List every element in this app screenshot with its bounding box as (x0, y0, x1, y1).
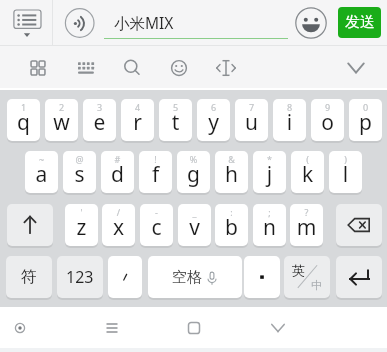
staticText: ; (253, 206, 286, 218)
button[interactable]: Shift (7, 204, 53, 246)
button[interactable]: Space (148, 256, 242, 298)
staticText: ? (290, 206, 323, 218)
button[interactable]: ! (139, 151, 172, 193)
button[interactable]: ) (329, 151, 362, 193)
staticText: 123 (66, 266, 94, 288)
staticText: 5 (159, 101, 192, 113)
staticText: h (215, 160, 248, 189)
button[interactable]: Voice input (62, 0, 98, 46)
button[interactable]: : (215, 204, 248, 246)
staticText: y (197, 108, 230, 137)
button[interactable]: Clipboard (0, 0, 52, 46)
staticText: 4 (121, 101, 154, 113)
button[interactable]: 9 (311, 99, 344, 141)
button[interactable]: & (215, 151, 248, 193)
button[interactable]: 7 (235, 99, 268, 141)
staticText: 6 (197, 101, 230, 113)
button[interactable]: Search (110, 46, 150, 88)
button[interactable]: Hide keyboard (336, 46, 376, 88)
button[interactable]: 123 (57, 256, 103, 298)
button[interactable]: % (177, 151, 210, 193)
staticText: s (63, 160, 96, 189)
button[interactable]: Enter (336, 256, 382, 298)
staticText: 英 (292, 262, 305, 278)
staticText: : (215, 206, 248, 218)
staticText: c (140, 213, 173, 242)
staticText: a (25, 160, 58, 189)
button[interactable]: @ (63, 151, 96, 193)
staticText: e (83, 108, 116, 137)
button[interactable]: Assistant (0, 308, 42, 352)
button[interactable]: 5 (159, 99, 192, 141)
button[interactable]: 1 (7, 99, 40, 141)
button[interactable]: Emoji (293, 0, 329, 46)
staticText: ~ (25, 153, 58, 165)
button[interactable]: Keyboard layout (66, 46, 106, 88)
button[interactable]: 8 (273, 99, 306, 141)
staticText: ) (329, 153, 362, 165)
button[interactable]: 2 (45, 99, 78, 141)
button[interactable]: ( (291, 151, 324, 193)
button[interactable]: Home (172, 308, 216, 352)
staticText: % (177, 153, 210, 165)
button[interactable]: Recents (90, 308, 134, 352)
staticText: p (349, 108, 382, 137)
staticText: v (178, 213, 211, 242)
staticText: u (235, 108, 268, 137)
staticText: * (253, 153, 286, 165)
button[interactable]: Comma (108, 256, 142, 298)
staticText: 9 (311, 101, 344, 113)
staticText: j (253, 160, 286, 189)
staticText: w (45, 108, 78, 137)
button[interactable]: * (253, 151, 286, 193)
staticText: n (253, 213, 286, 242)
staticText: ! (139, 153, 172, 165)
staticText: 1 (7, 101, 40, 113)
staticText: - (140, 206, 173, 218)
button[interactable]: ~ (25, 151, 58, 193)
button[interactable]: - (140, 204, 173, 246)
staticText: 7 (235, 101, 268, 113)
staticText: t (159, 108, 192, 137)
staticText: 0 (349, 101, 382, 113)
button[interactable]: 发送 (338, 7, 381, 38)
button[interactable]: 符 (6, 256, 52, 298)
staticText: 2 (45, 101, 78, 113)
staticText: 3 (83, 101, 116, 113)
staticText: / (102, 206, 135, 218)
button[interactable]: _ (178, 204, 211, 246)
button[interactable]: 4 (121, 99, 154, 141)
staticText: x (102, 213, 135, 242)
button[interactable]: ' (65, 204, 98, 246)
button[interactable]: Switch language (284, 256, 330, 298)
staticText: @ (63, 153, 96, 165)
button[interactable]: 6 (197, 99, 230, 141)
staticText: b (215, 213, 248, 242)
staticText: 发送 (345, 13, 375, 32)
staticText: z (65, 213, 98, 242)
staticText: 空格 (172, 268, 202, 287)
staticText: _ (178, 206, 211, 218)
button[interactable]: ? (290, 204, 323, 246)
button[interactable]: ; (253, 204, 286, 246)
staticText: ( (291, 153, 324, 165)
staticText: r (121, 108, 154, 137)
button[interactable]: 3 (83, 99, 116, 141)
staticText: k (291, 160, 324, 189)
staticText: l (329, 160, 362, 189)
staticText: i (273, 108, 306, 137)
button[interactable]: Symbols (18, 46, 58, 88)
button[interactable]: 0 (349, 99, 382, 141)
staticText: & (215, 153, 248, 165)
button[interactable]: # (101, 151, 134, 193)
button[interactable]: Period (244, 256, 280, 298)
staticText: m (290, 213, 323, 242)
staticText: g (177, 160, 210, 189)
button[interactable]: Emoticons (159, 46, 199, 88)
button[interactable]: / (102, 204, 135, 246)
staticText: ' (65, 206, 98, 218)
button[interactable]: Move cursor (206, 46, 246, 88)
button[interactable]: Hide (256, 308, 300, 352)
button[interactable]: Backspace (336, 204, 382, 246)
staticText: 中 (311, 278, 322, 292)
